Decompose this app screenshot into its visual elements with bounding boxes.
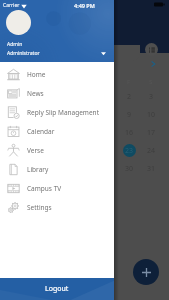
button[interactable]: Logout xyxy=(0,278,114,300)
staticText: Campus TV xyxy=(27,184,62,193)
button[interactable]: News xyxy=(0,84,114,103)
staticText: Settings xyxy=(27,203,52,212)
staticText: Administrator xyxy=(7,50,40,57)
staticText: 16 xyxy=(125,128,134,138)
staticText: Logout xyxy=(45,284,69,294)
button[interactable]: Home xyxy=(0,65,114,84)
staticText: 31 xyxy=(147,164,156,174)
staticText: 2 xyxy=(127,92,132,102)
staticText: 4:49 PM xyxy=(74,2,95,9)
staticText: 30 xyxy=(125,164,134,174)
staticText: Home xyxy=(27,70,46,79)
button[interactable]: Reply Slip Management xyxy=(0,103,114,122)
button[interactable]: Next month xyxy=(147,58,158,69)
button[interactable]: Calendar xyxy=(0,122,114,141)
staticText: 23 xyxy=(125,146,134,156)
button[interactable]: Verse xyxy=(0,141,114,160)
staticText: 3 xyxy=(149,92,154,102)
staticText: S xyxy=(17,78,21,86)
staticText: News xyxy=(27,89,44,98)
staticText: Reply Slip Management xyxy=(27,108,99,117)
button[interactable]: Expand account xyxy=(97,47,109,59)
button[interactable]: 23 xyxy=(123,144,136,157)
staticText: Calendar xyxy=(27,127,55,136)
staticText: Library xyxy=(27,165,49,174)
staticText: 24 xyxy=(147,146,156,156)
staticText: Carrier xyxy=(3,2,20,9)
staticText: 9 xyxy=(127,110,132,120)
staticText: Verse xyxy=(27,146,44,155)
button[interactable]: Settings xyxy=(0,198,114,217)
button[interactable]: Library xyxy=(0,160,114,179)
button[interactable]: Add xyxy=(133,259,159,285)
button[interactable]: Profile picture xyxy=(6,10,31,35)
button[interactable]: Menu xyxy=(145,43,158,56)
staticText: Admin xyxy=(7,41,23,48)
staticText: 10 xyxy=(147,110,156,120)
button[interactable]: Campus TV xyxy=(0,179,114,198)
